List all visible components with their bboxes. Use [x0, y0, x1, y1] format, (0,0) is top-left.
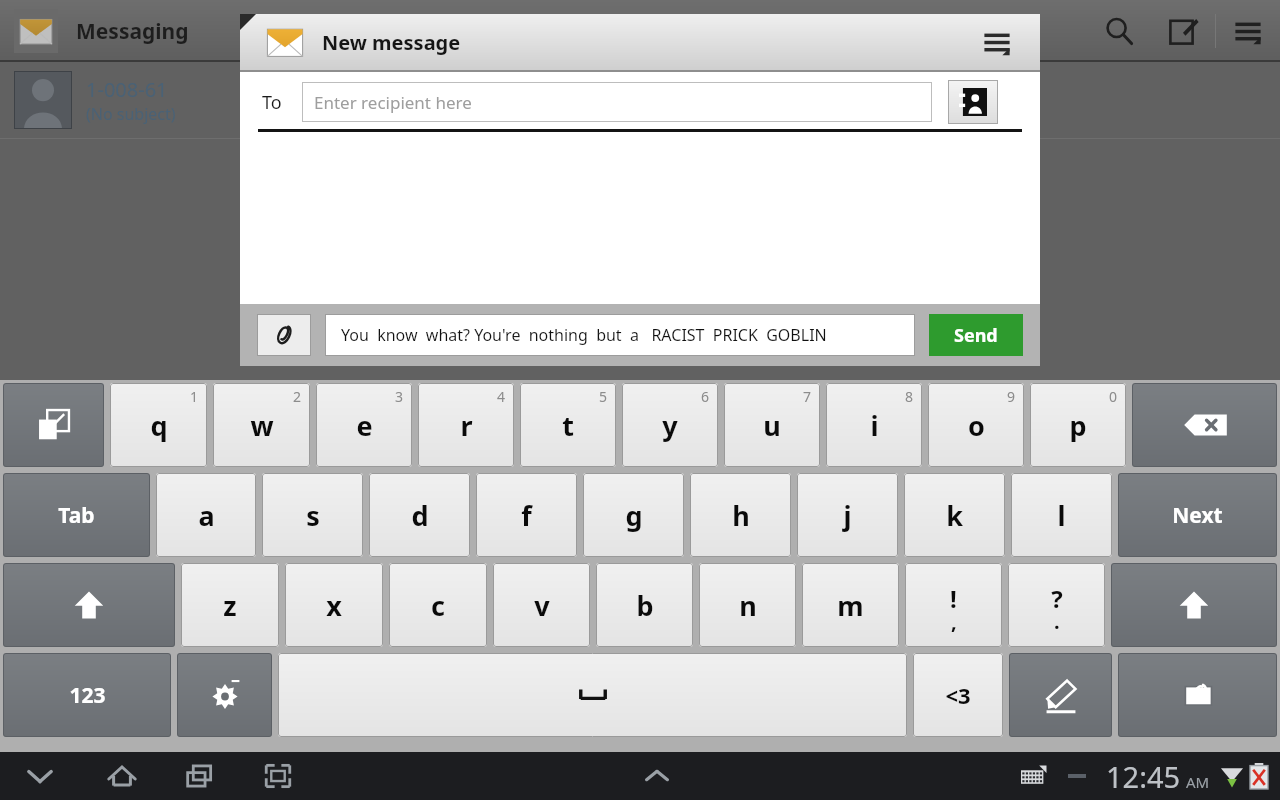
button[interactable]: Enter recipient here — [302, 82, 932, 122]
staticText: h — [732, 497, 750, 534]
button[interactable]: More options — [966, 14, 1028, 70]
button[interactable]: c — [389, 563, 487, 647]
button[interactable]: w — [213, 383, 310, 467]
button[interactable]: k — [904, 473, 1005, 557]
staticText: c — [431, 587, 445, 624]
button[interactable]: v — [493, 563, 590, 647]
staticText: 8 — [905, 387, 914, 406]
staticText: d — [411, 497, 429, 534]
staticText: q — [150, 407, 168, 444]
button[interactable]: Attach — [257, 314, 311, 356]
staticText: Messaging — [76, 17, 189, 46]
staticText: You know what? You're nothing but a RACI… — [341, 324, 827, 346]
button[interactable]: n — [699, 563, 796, 647]
button[interactable]: shift — [3, 563, 175, 647]
staticText: 123 — [69, 681, 106, 710]
staticText: y — [662, 407, 678, 444]
button[interactable]: h — [690, 473, 791, 557]
button[interactable]: Keyboard settings — [1012, 754, 1056, 798]
button[interactable]: clip — [1118, 653, 1277, 737]
button[interactable]: e — [316, 383, 412, 467]
staticText: (No subject) — [86, 103, 176, 125]
button[interactable]: Notifications — [633, 752, 681, 800]
button[interactable]: New message — [1151, 0, 1215, 62]
button[interactable]: f — [476, 473, 577, 557]
button[interactable]: j — [797, 473, 898, 557]
staticText: e — [356, 407, 373, 444]
button[interactable]: i — [826, 383, 922, 467]
staticText: o — [968, 407, 985, 444]
staticText: <3 — [945, 680, 971, 710]
staticText: w — [250, 407, 274, 444]
button[interactable]: pen — [1009, 653, 1112, 737]
button[interactable]: t — [520, 383, 616, 467]
staticText: j — [843, 497, 852, 534]
staticText: , — [951, 608, 957, 635]
staticText: 3 — [395, 387, 404, 406]
button[interactable]: gear — [177, 653, 272, 737]
button[interactable]: You know what? You're nothing but a RACI… — [325, 314, 915, 356]
staticText: g — [625, 497, 643, 534]
button[interactable]: x — [285, 563, 383, 647]
staticText: Enter recipient here — [314, 91, 472, 114]
button[interactable]: z — [181, 563, 279, 647]
staticText: To — [262, 90, 282, 115]
button[interactable]: m — [802, 563, 899, 647]
button[interactable]: ? — [1008, 563, 1105, 647]
staticText: r — [460, 407, 473, 444]
button[interactable]: space — [278, 653, 907, 737]
staticText: New message — [322, 29, 461, 56]
button[interactable]: More options — [1216, 0, 1280, 62]
staticText: 4 — [497, 387, 506, 406]
button[interactable]: r — [418, 383, 514, 467]
button[interactable]: Screenshot — [254, 752, 302, 800]
button[interactable]: Search — [1087, 0, 1151, 62]
staticText: x — [326, 587, 342, 624]
staticText: v — [534, 587, 550, 624]
button[interactable]: d — [369, 473, 470, 557]
button[interactable]: shift — [1111, 563, 1277, 647]
staticText: u — [763, 407, 781, 444]
button[interactable]: Choose contact — [948, 80, 998, 124]
button[interactable]: l — [1011, 473, 1112, 557]
button[interactable]: g — [583, 473, 684, 557]
staticText: p — [1069, 407, 1087, 444]
button[interactable]: Tab — [3, 473, 150, 557]
staticText: 5 — [599, 387, 608, 406]
staticText: Next — [1172, 501, 1223, 530]
staticText: l — [1057, 497, 1066, 534]
staticText: ? — [1051, 582, 1063, 615]
button[interactable]: q — [110, 383, 207, 467]
button[interactable]: ! — [905, 563, 1002, 647]
button[interactable]: Hide keyboard — [16, 752, 64, 800]
staticText: AM — [1186, 772, 1210, 792]
staticText: 1 — [190, 387, 199, 406]
button[interactable]: 123 — [3, 653, 171, 737]
button[interactable]: Home — [98, 752, 146, 800]
staticText: . — [1054, 608, 1060, 635]
button[interactable]: Next — [1118, 473, 1277, 557]
button[interactable]: <3 — [913, 653, 1003, 737]
button[interactable]: s — [262, 473, 363, 557]
button[interactable]: Send — [929, 314, 1023, 356]
staticText: m — [837, 587, 864, 624]
button[interactable]: back — [1132, 383, 1277, 467]
button[interactable]: 1-008-61 — [0, 62, 1280, 138]
button[interactable]: p — [1030, 383, 1126, 467]
button[interactable]: u — [724, 383, 820, 467]
button[interactable]: y — [622, 383, 718, 467]
staticText: z — [223, 587, 237, 624]
button[interactable]: hide — [3, 383, 104, 467]
staticText: s — [306, 497, 320, 534]
staticText: 9 — [1007, 387, 1016, 406]
staticText: a — [198, 497, 215, 534]
staticText: t — [562, 407, 574, 444]
staticText: b — [636, 587, 654, 624]
staticText: 2 — [293, 387, 302, 406]
staticText: 0 — [1109, 387, 1118, 406]
button[interactable]: Recent apps — [176, 752, 224, 800]
button[interactable]: o — [928, 383, 1024, 467]
button[interactable]: a — [156, 473, 256, 557]
button[interactable]: b — [596, 563, 693, 647]
